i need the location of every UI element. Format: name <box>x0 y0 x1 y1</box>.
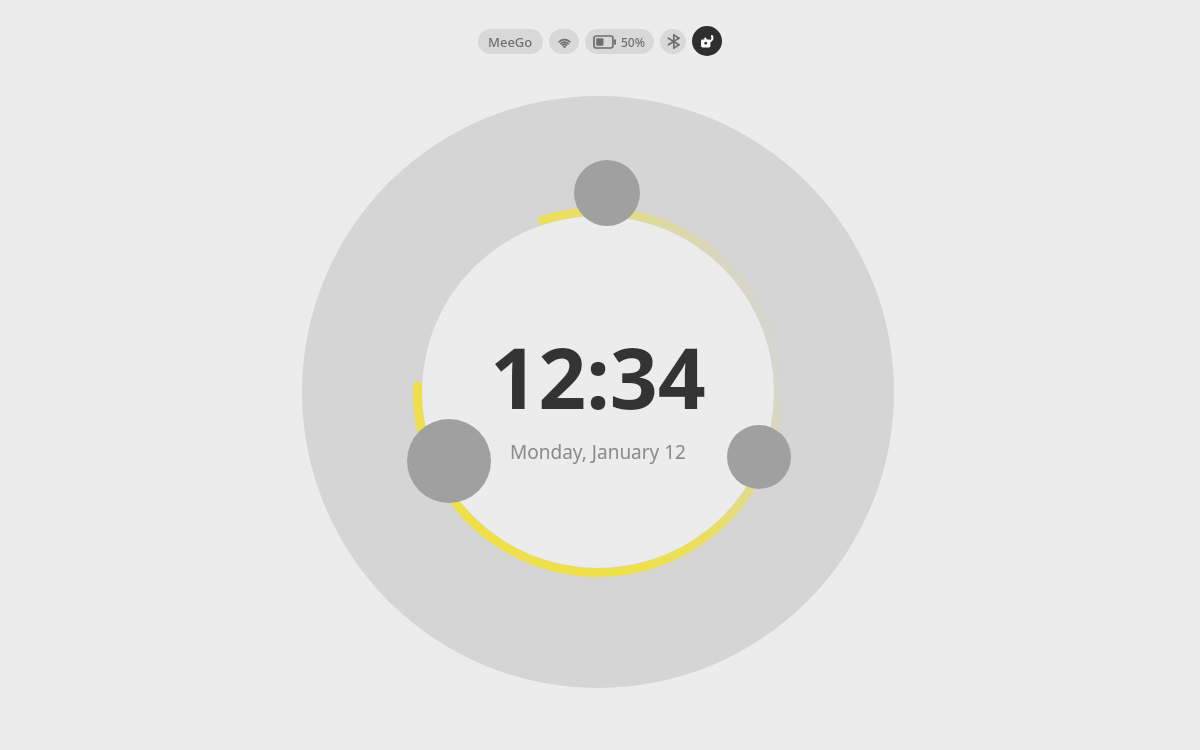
button[interactable]: Battery 50 percent <box>585 29 654 54</box>
button[interactable]: Wi-Fi <box>549 29 579 54</box>
staticText: 50% <box>621 34 645 50</box>
button[interactable]: Top complication <box>574 160 640 226</box>
button[interactable]: Right complication <box>727 425 791 489</box>
button[interactable]: MeeGo <box>478 29 543 54</box>
staticText: Monday, January 12 <box>510 439 686 465</box>
button[interactable]: Unlock <box>692 26 722 56</box>
staticText: MeeGo <box>488 33 533 51</box>
staticText: 12:34 <box>490 319 706 433</box>
button[interactable]: Bluetooth <box>660 29 686 54</box>
button[interactable]: Left complication <box>407 419 491 503</box>
button[interactable]: 12:34 <box>480 317 716 467</box>
